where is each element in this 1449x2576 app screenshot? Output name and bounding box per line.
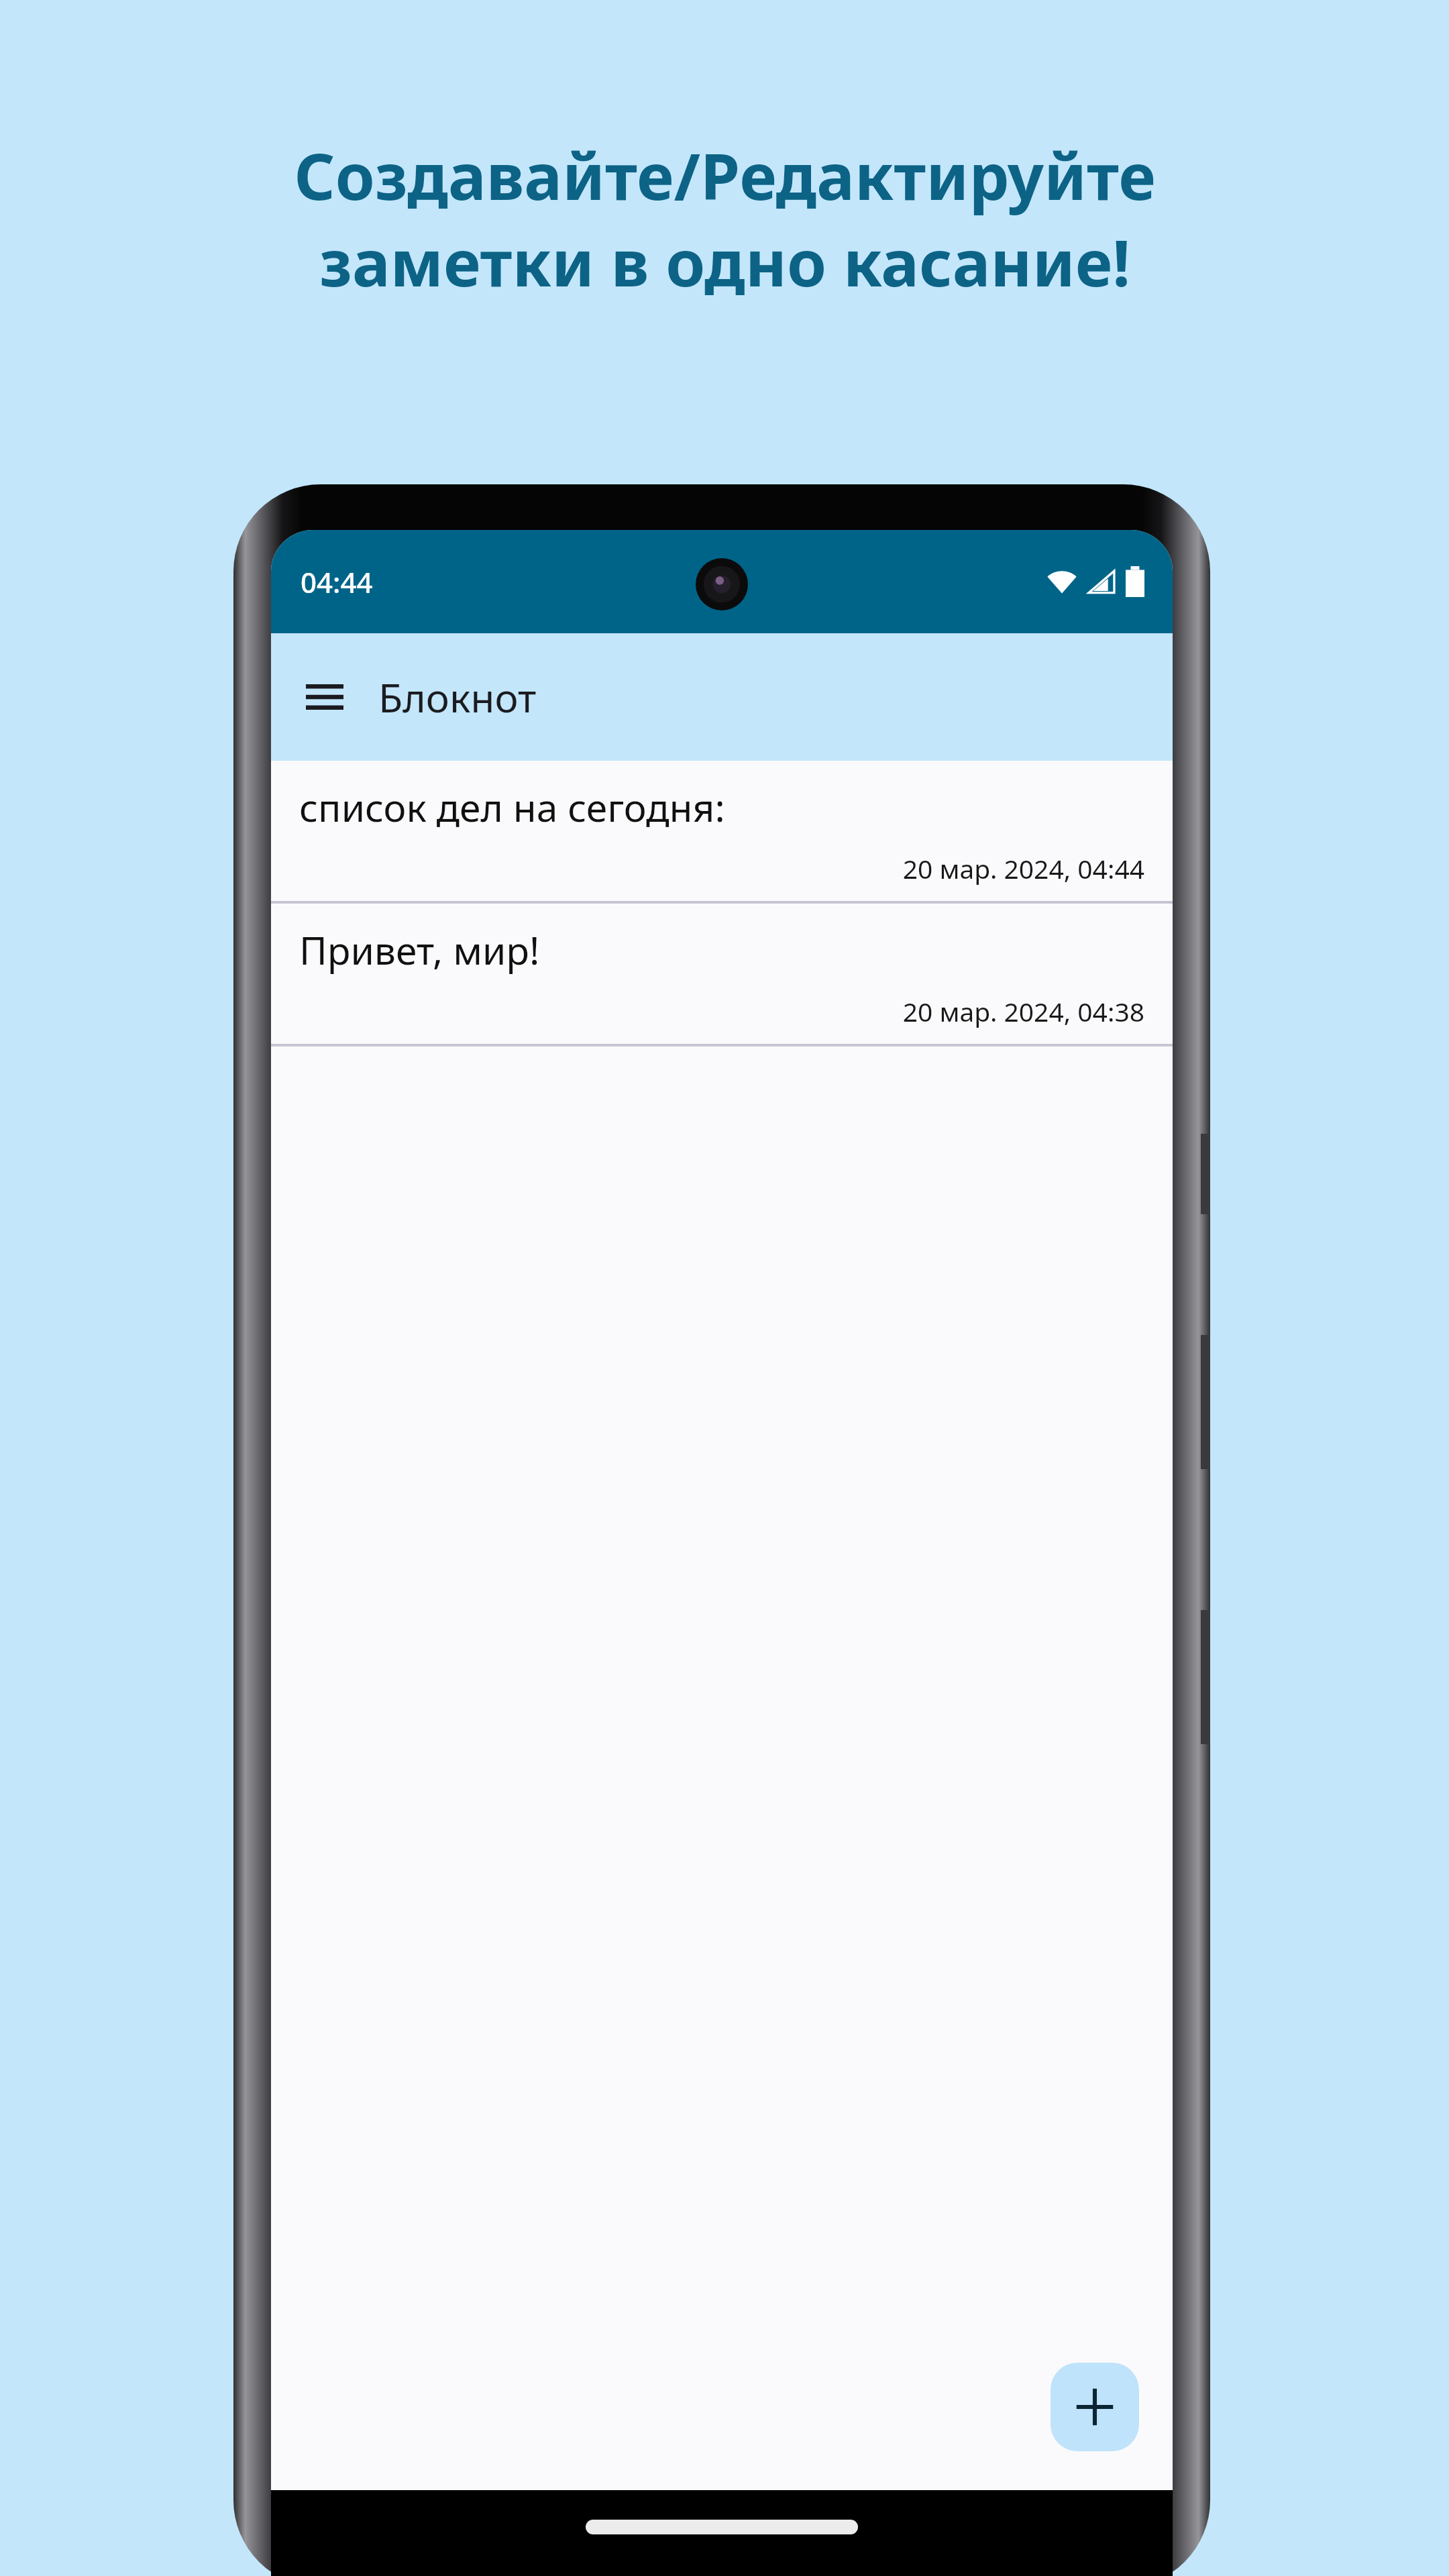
button[interactable]: Меню: [298, 670, 352, 724]
staticText: Привет, мир!: [299, 924, 540, 976]
button[interactable]: Привет, мир!: [271, 904, 1173, 1044]
button[interactable]: Создать заметку: [1051, 2363, 1139, 2451]
staticText: 20 мар. 2024, 04:38: [299, 994, 1144, 1029]
button[interactable]: список дел на сегодня:: [271, 761, 1173, 901]
staticText: Блокнот: [378, 670, 537, 724]
staticText: заметки в одно касание!: [319, 218, 1130, 305]
staticText: 04:44: [301, 563, 373, 601]
staticText: Создавайте/Редактируйте: [294, 131, 1156, 218]
staticText: список дел на сегодня:: [299, 781, 725, 833]
staticText: 20 мар. 2024, 04:44: [299, 851, 1144, 886]
